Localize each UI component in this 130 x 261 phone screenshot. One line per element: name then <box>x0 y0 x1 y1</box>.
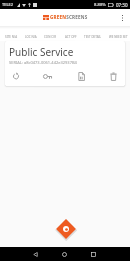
staticText: GREENSCREENS <box>50 14 88 20</box>
staticText: SERIAL: a8c0473-0061-442e32937B4 <box>9 60 77 65</box>
staticText: Public Service <box>9 45 74 59</box>
button[interactable]: CON C/R <box>44 35 57 39</box>
button[interactable]: Public Service <box>5 41 125 86</box>
staticText: 07:30 <box>116 2 128 8</box>
staticText: WE NEED SET <box>109 35 128 39</box>
button[interactable]: LOC N/A <box>25 35 37 39</box>
button[interactable]: TEST DETAIL <box>84 35 102 39</box>
staticText: CON C/R <box>44 35 57 39</box>
staticText: ACT OFF <box>65 35 77 39</box>
button[interactable]: More options <box>114 10 130 26</box>
button[interactable]: Document <box>74 69 88 83</box>
button[interactable]: Home <box>57 247 71 261</box>
button[interactable]: Key <box>41 69 55 83</box>
staticText: SITE N/A <box>5 35 18 39</box>
staticText: TELE2 <box>2 2 14 7</box>
button[interactable]: Delete <box>106 69 120 83</box>
button[interactable]: WE NEED SET <box>109 35 128 39</box>
button[interactable]: SITE N/A <box>5 35 18 39</box>
button[interactable]: Refresh <box>9 69 23 83</box>
button[interactable]: Back <box>28 247 42 261</box>
button[interactable]: Add <box>52 215 80 243</box>
button[interactable]: Recents <box>86 247 100 261</box>
staticText: LOC N/A <box>25 35 37 39</box>
staticText: 8.88% <box>94 2 106 8</box>
button[interactable]: ACT OFF <box>65 35 77 39</box>
staticText: TEST DETAIL <box>84 35 102 39</box>
